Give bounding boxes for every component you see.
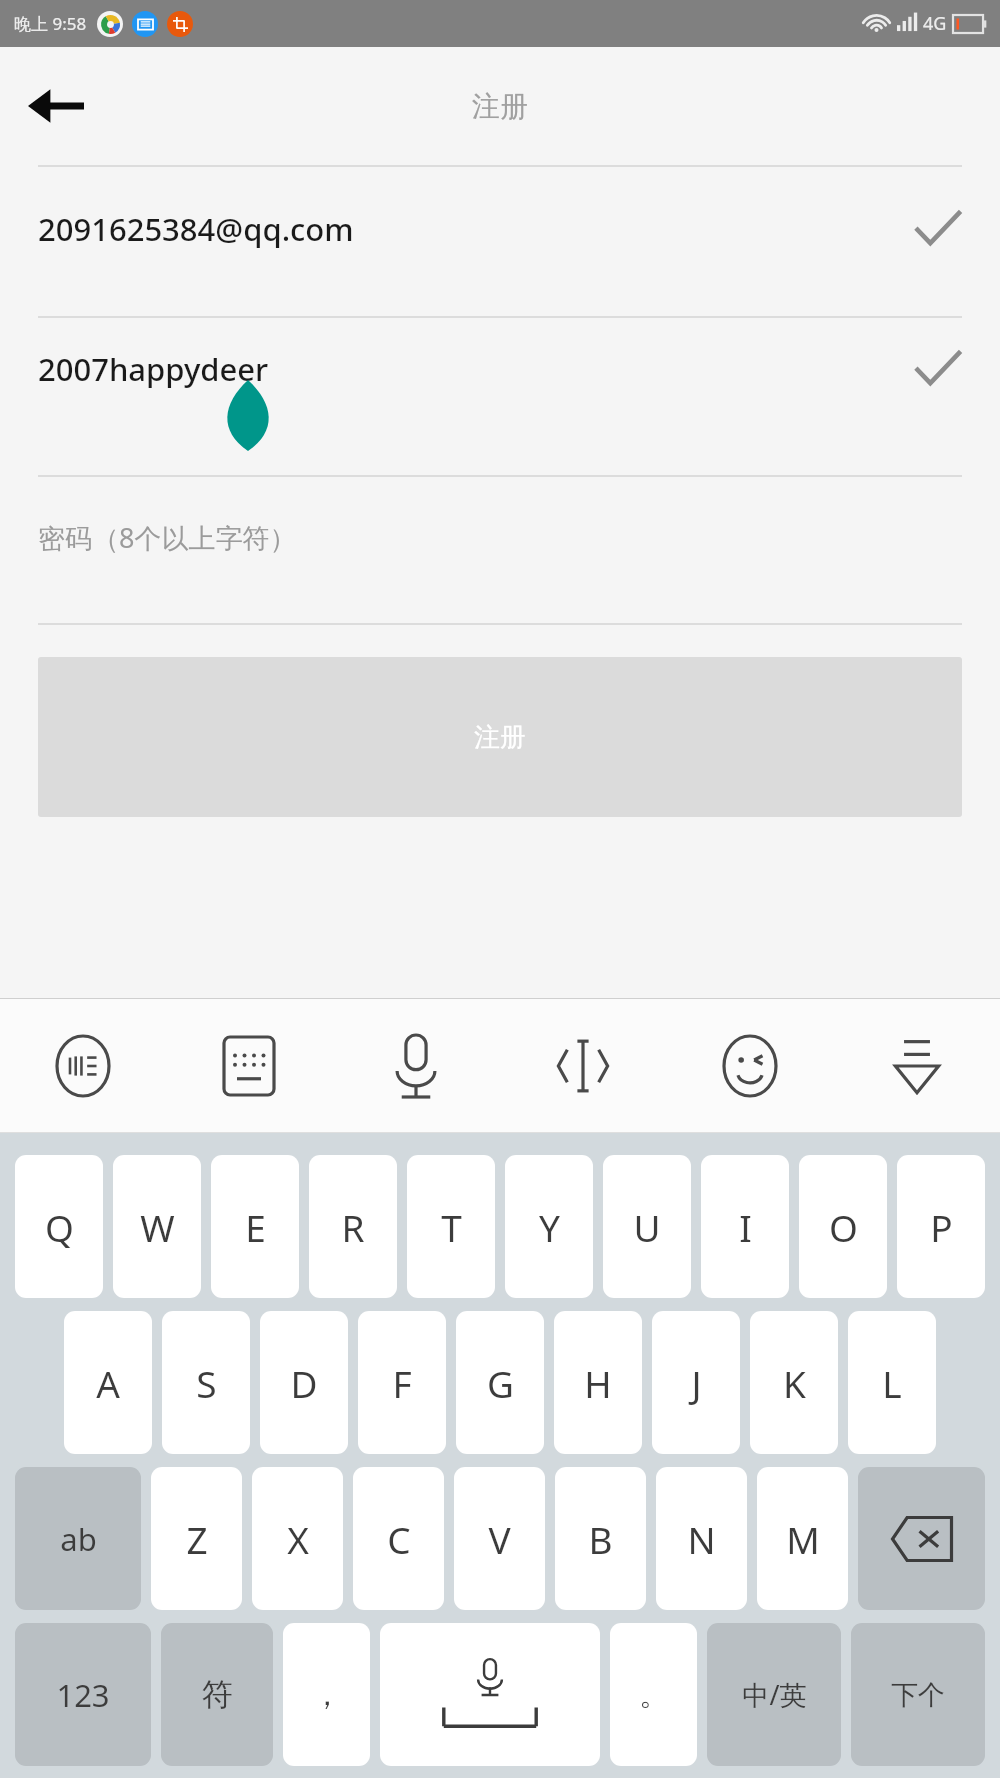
button[interactable]: Back	[20, 70, 92, 142]
button[interactable]: N	[656, 1467, 747, 1610]
button[interactable]: E	[211, 1155, 299, 1298]
button[interactable]: A	[64, 1311, 152, 1454]
staticText: 中/英	[742, 1676, 807, 1713]
staticText: Z	[186, 1514, 208, 1564]
staticText: 晚上 9:58	[14, 12, 87, 35]
staticText: A	[96, 1358, 120, 1408]
button[interactable]: 123	[15, 1623, 151, 1766]
button[interactable]: ，	[283, 1623, 370, 1766]
staticText: 2007happydeer	[38, 348, 269, 390]
staticText: T	[441, 1202, 462, 1252]
button[interactable]: G	[456, 1311, 544, 1454]
button[interactable]: D	[260, 1311, 348, 1454]
button[interactable]: R	[309, 1155, 397, 1298]
staticText: R	[341, 1202, 365, 1252]
button[interactable]: 中/英	[707, 1623, 841, 1766]
staticText: 密码（8个以上字符）	[38, 519, 297, 556]
staticText: 符	[202, 1675, 233, 1714]
button[interactable]: S	[162, 1311, 250, 1454]
staticText: ，	[312, 1676, 342, 1714]
button[interactable]: K	[750, 1311, 838, 1454]
staticText: 注册	[472, 89, 528, 124]
staticText: I	[739, 1202, 752, 1252]
button[interactable]: 2007happydeer	[38, 318, 962, 475]
button[interactable]: C	[353, 1467, 444, 1610]
button[interactable]: 2091625384@qq.com	[38, 167, 962, 316]
button[interactable]: Keyboard layout	[166, 999, 332, 1133]
staticText: L	[882, 1358, 902, 1408]
staticText: F	[392, 1358, 412, 1408]
button[interactable]: Emoji	[666, 999, 833, 1133]
staticText: K	[783, 1358, 806, 1408]
staticText: G	[487, 1358, 514, 1408]
button[interactable]: B	[555, 1467, 646, 1610]
button[interactable]: T	[407, 1155, 495, 1298]
staticText: 。	[639, 1676, 669, 1714]
button[interactable]: W	[113, 1155, 201, 1298]
staticText: ab	[60, 1518, 97, 1560]
button[interactable]: F	[358, 1311, 446, 1454]
button[interactable]: Voice input	[332, 999, 499, 1133]
button[interactable]: 密码（8个以上字符）	[38, 477, 962, 623]
staticText: J	[691, 1358, 702, 1408]
button[interactable]: Text cursor	[499, 999, 666, 1133]
button[interactable]: Input method	[0, 999, 166, 1133]
button[interactable]: ab	[15, 1467, 141, 1610]
staticText: V	[488, 1514, 511, 1564]
button[interactable]: J	[652, 1311, 740, 1454]
button[interactable]: Delete	[858, 1467, 985, 1610]
staticText: M	[786, 1514, 820, 1564]
button[interactable]: X	[252, 1467, 343, 1610]
button[interactable]: H	[554, 1311, 642, 1454]
staticText: H	[584, 1358, 612, 1408]
button[interactable]: Q	[15, 1155, 103, 1298]
button[interactable]: Z	[151, 1467, 242, 1610]
button[interactable]: I	[701, 1155, 789, 1298]
button[interactable]: 下个	[851, 1623, 985, 1766]
staticText: P	[930, 1202, 953, 1252]
staticText: 2091625384@qq.com	[38, 208, 354, 250]
button[interactable]: Y	[505, 1155, 593, 1298]
button[interactable]: L	[848, 1311, 936, 1454]
button[interactable]: 。	[610, 1623, 697, 1766]
button[interactable]: M	[757, 1467, 848, 1610]
staticText: O	[829, 1202, 858, 1252]
staticText: U	[633, 1202, 661, 1252]
button[interactable]: O	[799, 1155, 887, 1298]
staticText: W	[140, 1202, 175, 1252]
button[interactable]: V	[454, 1467, 545, 1610]
staticText: 注册	[474, 721, 526, 754]
staticText: E	[245, 1202, 266, 1252]
staticText: B	[588, 1514, 613, 1564]
staticText: 下个	[891, 1678, 945, 1712]
button[interactable]: U	[603, 1155, 691, 1298]
staticText: 4G	[923, 11, 947, 36]
staticText: Q	[45, 1202, 74, 1252]
button[interactable]: Hide keyboard	[833, 999, 1000, 1133]
staticText: 123	[56, 1674, 110, 1716]
staticText: C	[387, 1514, 411, 1564]
staticText: Y	[539, 1202, 560, 1252]
button[interactable]: P	[897, 1155, 985, 1298]
button[interactable]: 符	[161, 1623, 273, 1766]
button[interactable]: Space	[380, 1623, 600, 1766]
staticText: S	[196, 1358, 217, 1408]
staticText: N	[687, 1514, 716, 1564]
staticText: X	[287, 1514, 309, 1564]
staticText: D	[290, 1358, 318, 1408]
